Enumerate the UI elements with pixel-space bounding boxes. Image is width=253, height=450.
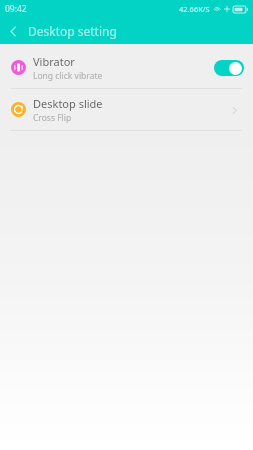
staticText: 42.66K/S [179,4,210,14]
staticText: Vibrator [33,54,75,69]
staticText: 09:42 [5,3,27,15]
button[interactable]: Desktop slide [0,89,253,130]
button[interactable]: Back [0,18,26,44]
other: Open Desktop slide [224,100,244,120]
button[interactable]: Vibrator toggle [214,60,244,76]
staticText: Cross Flip [33,112,72,124]
staticText: Desktop setting [28,23,117,39]
staticText: Long click vibrate [33,70,103,82]
staticText: Desktop slide [33,96,103,111]
button[interactable]: Vibrator [0,47,253,88]
